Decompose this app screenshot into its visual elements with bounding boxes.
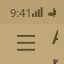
staticText: 9:41 — [10, 5, 32, 20]
staticText: Archive — [52, 24, 58, 64]
button[interactable]: Open navigation menu — [6, 24, 46, 64]
